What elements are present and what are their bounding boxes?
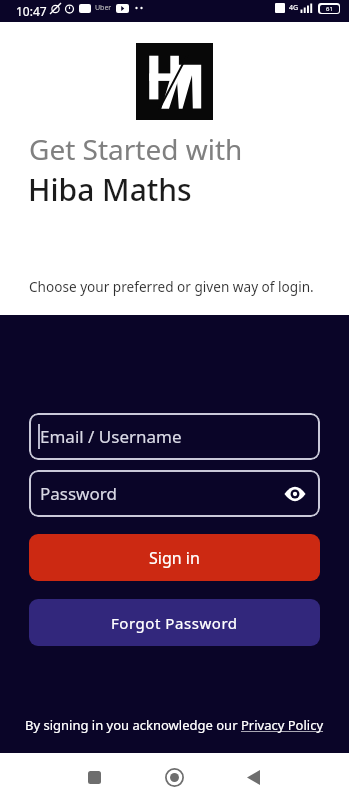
staticText: Choose your preferred or given way of lo… [29, 277, 314, 296]
staticText: Password [40, 482, 117, 505]
button[interactable]: Back [229, 753, 277, 800]
staticText: Forgot Password [111, 613, 238, 633]
button[interactable]: Sign in [29, 534, 320, 581]
button[interactable]: Home [150, 753, 198, 800]
staticText: 10:47 [16, 3, 47, 19]
button[interactable]: Show password [282, 481, 308, 507]
staticText: Hiba Maths [28, 169, 192, 210]
button[interactable]: Password [29, 470, 320, 517]
staticText: Get Started with [29, 130, 243, 168]
button[interactable]: Forgot Password [29, 599, 320, 646]
staticText: 4G [289, 3, 299, 13]
button[interactable]: Email / Username [29, 413, 320, 460]
staticText: By signing in you acknowledge our [25, 716, 241, 734]
button[interactable]: Privacy Policy [241, 716, 324, 734]
staticText: Email / Username [40, 425, 182, 448]
staticText: Uber [95, 3, 112, 13]
staticText: Privacy Policy [241, 716, 324, 734]
staticText: 61 [326, 5, 333, 13]
staticText: Sign in [149, 547, 200, 569]
button[interactable]: Recents [70, 753, 118, 800]
